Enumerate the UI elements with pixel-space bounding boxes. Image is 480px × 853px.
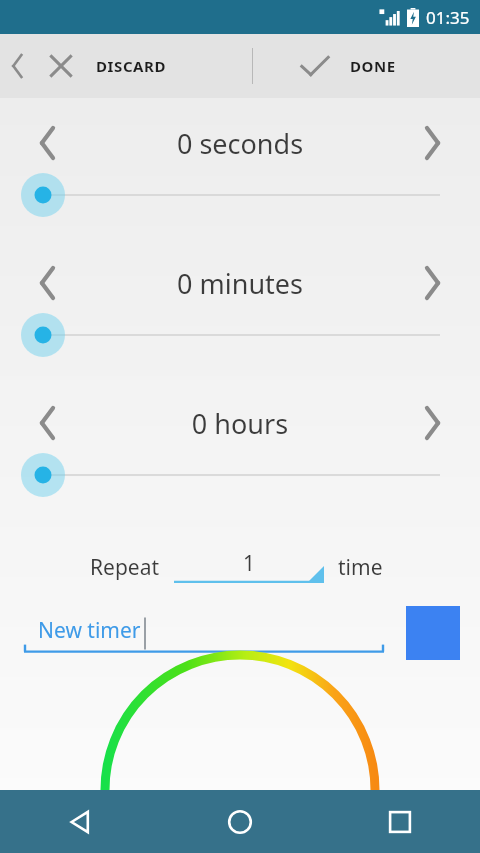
button[interactable]: Increase 0 seconds [384, 114, 480, 172]
staticText: New timer [38, 616, 141, 645]
button[interactable]: DISCARD [48, 34, 248, 98]
button[interactable]: Back [0, 790, 160, 853]
button[interactable]: Home [160, 790, 320, 853]
button[interactable]: Increase 0 hours [384, 394, 480, 452]
staticText: 01:35 [426, 6, 470, 29]
staticText: 1 [243, 549, 256, 578]
staticText: time [338, 553, 383, 582]
button[interactable]: Increase 0 minutes [384, 254, 480, 312]
button[interactable]: New timer [24, 602, 384, 664]
staticText: DISCARD [96, 56, 167, 76]
button[interactable]: DONE [300, 34, 480, 98]
button[interactable] [0, 312, 480, 358]
staticText: 0 hours [96, 405, 384, 442]
staticText: 0 minutes [96, 265, 384, 302]
button[interactable]: Back [0, 34, 34, 98]
button[interactable]: 1 [174, 545, 324, 589]
staticText: DONE [350, 56, 396, 76]
button[interactable]: Decrease 0 seconds [0, 114, 96, 172]
staticText: 0 seconds [96, 125, 384, 162]
button[interactable] [0, 172, 480, 218]
button[interactable]: Recents [320, 790, 480, 853]
button[interactable]: Decrease 0 minutes [0, 254, 96, 312]
staticText: Repeat [90, 553, 160, 582]
button[interactable]: Decrease 0 hours [0, 394, 96, 452]
button[interactable] [0, 452, 480, 498]
